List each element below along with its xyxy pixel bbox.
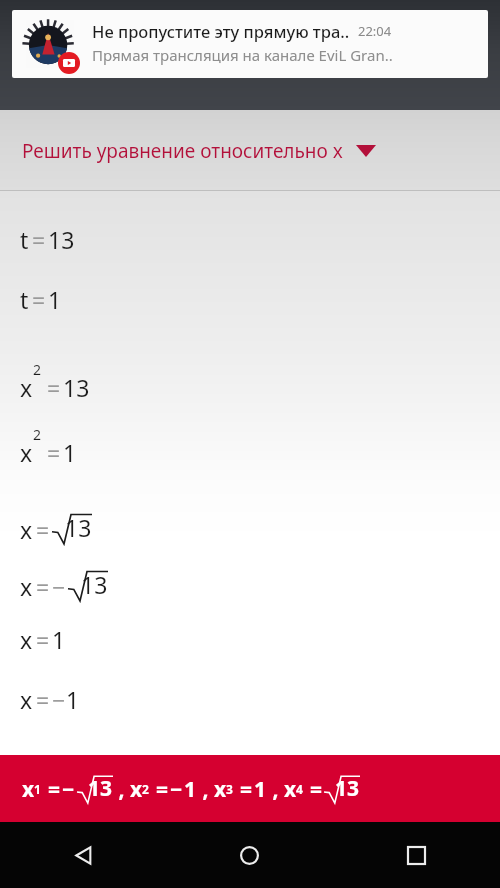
staticText: − bbox=[52, 571, 66, 602]
button[interactable]: Recent apps bbox=[333, 822, 500, 888]
staticText: 3 bbox=[226, 781, 233, 797]
staticText: x bbox=[20, 624, 33, 655]
staticText: t bbox=[20, 224, 29, 255]
staticText: 1 bbox=[184, 775, 197, 804]
staticText: 4 bbox=[296, 781, 303, 797]
staticText: t bbox=[20, 284, 29, 315]
staticText: 13 bbox=[65, 512, 92, 543]
button[interactable]: Back bbox=[0, 822, 166, 888]
staticText: = bbox=[36, 571, 50, 602]
staticText: = bbox=[32, 224, 46, 255]
staticText: = bbox=[36, 514, 50, 545]
staticText: x bbox=[20, 437, 33, 468]
staticText: − bbox=[170, 775, 183, 804]
staticText: , bbox=[113, 775, 130, 804]
staticText: 13 bbox=[63, 372, 90, 403]
staticText: 22:04 bbox=[358, 22, 392, 40]
staticText: 2 bbox=[33, 425, 42, 444]
staticText: = bbox=[32, 284, 46, 315]
staticText: = bbox=[48, 775, 61, 804]
staticText: = bbox=[36, 684, 50, 715]
button[interactable]: Не пропустите эту прямую тра.. bbox=[12, 10, 488, 78]
button[interactable]: Home bbox=[166, 822, 333, 888]
staticText: = bbox=[240, 775, 253, 804]
staticText: x bbox=[20, 571, 33, 602]
staticText: Решить уравнение относительно x bbox=[22, 138, 343, 164]
staticText: = bbox=[47, 437, 61, 468]
staticText: x bbox=[284, 775, 297, 804]
staticText: x bbox=[214, 775, 227, 804]
staticText: 1 bbox=[48, 284, 62, 315]
staticText: , bbox=[267, 775, 284, 804]
staticText: x bbox=[20, 684, 33, 715]
staticText: = bbox=[156, 775, 169, 804]
staticText: 1 bbox=[63, 437, 77, 468]
staticText: 13 bbox=[48, 224, 75, 255]
staticText: x bbox=[22, 775, 35, 804]
staticText: Прямая трансляция на канале EviL Gran.. bbox=[92, 45, 393, 65]
staticText: 2 bbox=[142, 781, 149, 797]
staticText: = bbox=[310, 775, 323, 804]
staticText: x bbox=[130, 775, 143, 804]
staticText: 1 bbox=[66, 684, 80, 715]
staticText: 1 bbox=[254, 775, 267, 804]
staticText: = bbox=[36, 624, 50, 655]
staticText: x bbox=[20, 372, 33, 403]
staticText: Не пропустите эту прямую тра.. bbox=[92, 20, 350, 42]
staticText: 1 bbox=[52, 624, 66, 655]
staticText: − bbox=[52, 684, 66, 715]
staticText: , bbox=[197, 775, 214, 804]
staticText: 13 bbox=[81, 569, 108, 600]
staticText: 13 bbox=[88, 774, 113, 802]
button[interactable]: Решить уравнение относительно x bbox=[0, 110, 500, 191]
staticText: x bbox=[20, 514, 33, 545]
staticText: 1 bbox=[34, 781, 41, 797]
staticText: = bbox=[47, 372, 61, 403]
staticText: − bbox=[62, 775, 75, 804]
button[interactable]: x bbox=[0, 755, 500, 822]
staticText: 13 bbox=[335, 774, 360, 802]
staticText: 2 bbox=[33, 360, 42, 379]
